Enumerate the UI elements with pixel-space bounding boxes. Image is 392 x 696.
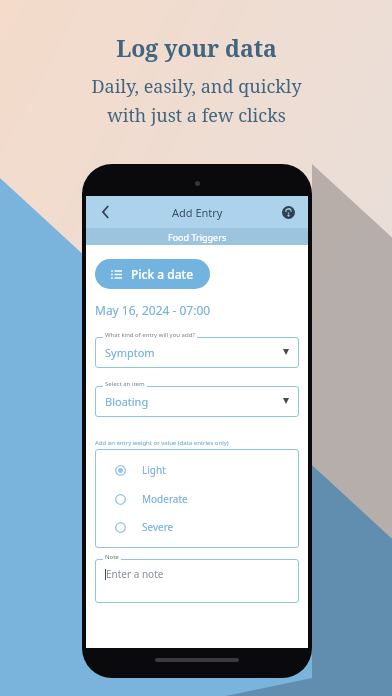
staticText: Moderate [142,492,188,506]
button[interactable]: Pick a date [95,259,210,289]
staticText: Log your data [116,32,277,63]
staticText: Enter a note [106,567,164,581]
button[interactable]: Severe [95,520,299,534]
button[interactable]: Back [94,200,118,224]
staticText: Severe [142,520,174,534]
staticText: Select an item [105,380,145,388]
staticText: What kind of entry will you add? [105,331,195,339]
button[interactable]: What kind of entry will you add? [95,331,299,368]
staticText: Food Triggers [168,231,227,243]
staticText: Bloating [105,394,149,409]
button[interactable]: Select an item [95,380,299,417]
button[interactable]: Moderate [95,492,299,506]
staticText: Note [105,553,119,561]
staticText: with just a few clicks [107,103,286,128]
staticText: Pick a date [131,266,194,282]
button[interactable]: Light [95,463,299,477]
staticText: May 16, 2024 - 07:00 [95,302,211,318]
button[interactable] [95,559,299,603]
staticText: Light [142,463,166,477]
staticText: Add an entry weight or value (data entri… [95,439,229,447]
button[interactable]: Help [276,200,300,224]
staticText: Daily, easily, and quickly [91,74,302,99]
staticText: Symptom [105,345,155,360]
staticText: Add Entry [172,205,223,220]
